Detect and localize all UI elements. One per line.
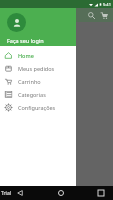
staticText: 5:41 — [103, 2, 111, 7]
staticText: Carrinho — [18, 78, 41, 85]
button[interactable]: Categorias — [0, 88, 76, 101]
button[interactable]: Carrinho — [0, 75, 76, 88]
button[interactable]: Recents — [95, 187, 107, 199]
button[interactable]: Configurações — [0, 101, 76, 114]
staticText: Home — [18, 52, 34, 59]
button[interactable]: Home — [55, 187, 67, 199]
button[interactable]: Meus pedidos — [0, 62, 76, 75]
staticText: Categorias — [18, 91, 46, 98]
button[interactable]: Back — [14, 187, 26, 199]
staticText: Configurações — [18, 104, 56, 111]
staticText: Faça seu login — [7, 37, 44, 44]
button[interactable]: Profile — [7, 13, 26, 32]
staticText: Meus pedidos — [18, 65, 55, 72]
button[interactable]: Search — [85, 9, 98, 22]
button[interactable]: Cart — [98, 9, 111, 22]
button[interactable]: Home — [0, 49, 76, 62]
staticText: Trial — [1, 190, 11, 197]
